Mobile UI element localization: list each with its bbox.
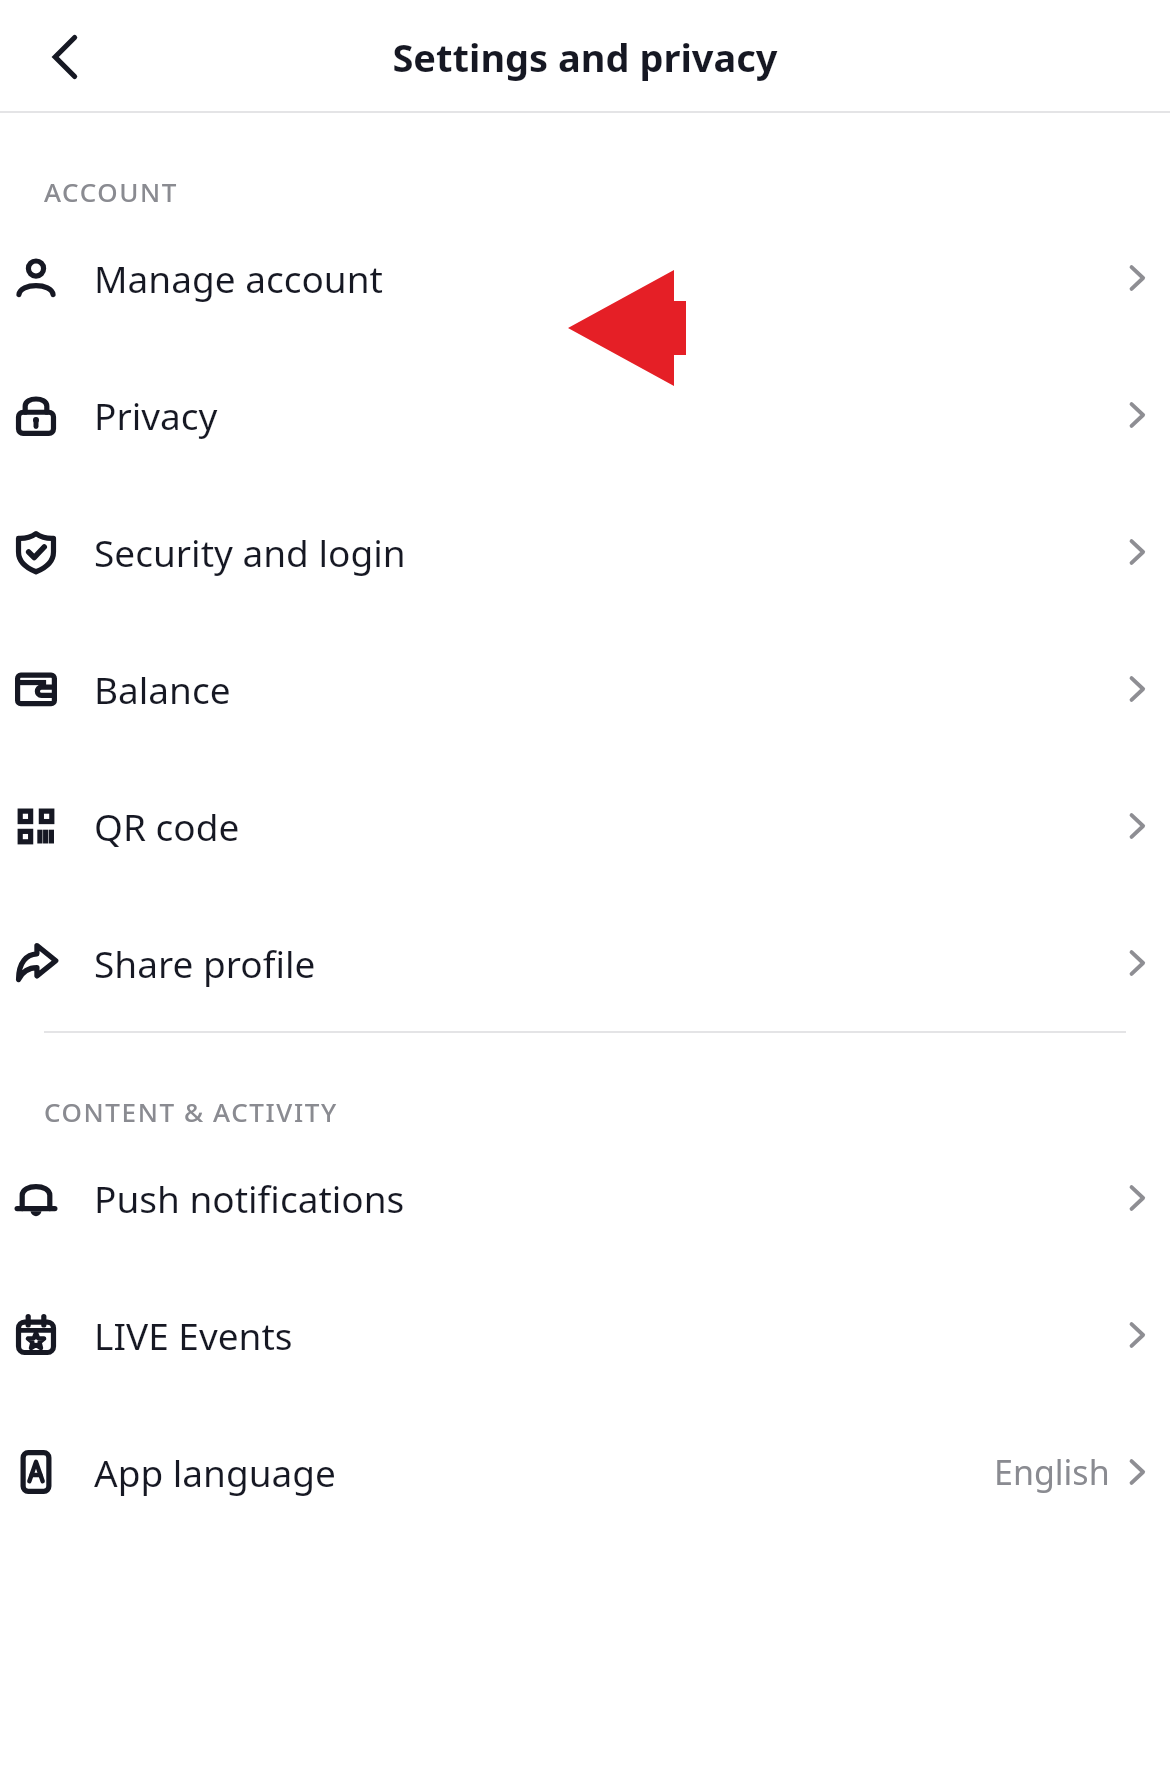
staticText: Manage account	[94, 253, 383, 303]
staticText: CONTENT & ACTIVITY	[44, 1094, 338, 1129]
staticText: Push notifications	[94, 1173, 405, 1223]
button[interactable]: Back	[26, 17, 106, 97]
staticText: Balance	[94, 664, 231, 714]
button[interactable]: Share profile	[0, 894, 1170, 1031]
staticText: QR code	[94, 801, 240, 851]
button[interactable]: LIVE Events	[0, 1266, 1170, 1403]
button[interactable]: Manage account	[0, 209, 1170, 346]
staticText: ACCOUNT	[44, 174, 179, 209]
button[interactable]: Privacy	[0, 346, 1170, 483]
staticText: Security and login	[94, 527, 406, 577]
button[interactable]: QR code	[0, 757, 1170, 894]
button[interactable]: Push notifications	[0, 1129, 1170, 1266]
staticText: Share profile	[94, 938, 316, 988]
staticText: Privacy	[94, 390, 218, 440]
button[interactable]: Balance	[0, 620, 1170, 757]
button[interactable]: App language	[0, 1403, 1170, 1540]
staticText: App language	[94, 1447, 336, 1497]
staticText: Settings and privacy	[392, 31, 778, 83]
button[interactable]: Security and login	[0, 483, 1170, 620]
staticText: English	[994, 1449, 1110, 1495]
staticText: LIVE Events	[94, 1310, 293, 1360]
